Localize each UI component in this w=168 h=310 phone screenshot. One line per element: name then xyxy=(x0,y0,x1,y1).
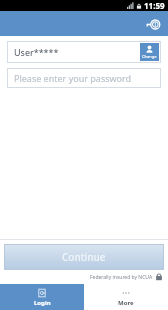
button[interactable]: User***** xyxy=(7,41,138,63)
button[interactable]: Please enter your password xyxy=(7,68,161,88)
button[interactable]: Rates xyxy=(143,14,163,34)
staticText: Continue xyxy=(62,250,106,264)
staticText: Change xyxy=(142,54,157,59)
staticText: More xyxy=(118,299,134,307)
staticText: 11:59 xyxy=(144,0,165,11)
button[interactable]: Login xyxy=(0,284,84,310)
staticText: User***** xyxy=(14,46,59,58)
staticText: Federally insured by NCUA xyxy=(90,274,153,281)
button[interactable]: Continue xyxy=(4,244,164,270)
staticText: Login xyxy=(34,299,51,307)
button[interactable]: More xyxy=(84,284,168,310)
button[interactable]: Change user xyxy=(140,43,159,61)
staticText: Please enter your password xyxy=(14,72,132,84)
